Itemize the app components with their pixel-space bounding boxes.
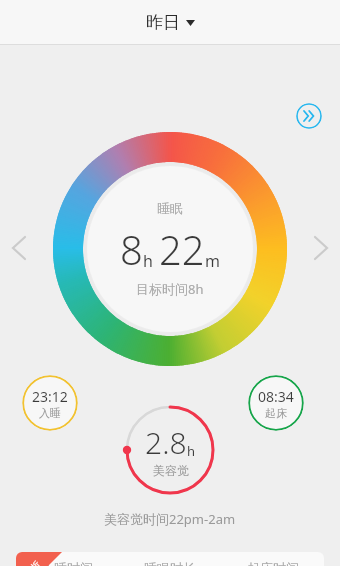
- staticText: 目标时间8h: [136, 280, 204, 298]
- button[interactable]: 08:34: [248, 375, 304, 431]
- staticText: 8: [120, 222, 143, 276]
- staticText: 睡眠: [157, 200, 183, 216]
- staticText: 睡眠时长: [144, 560, 196, 566]
- staticText: 入睡时间: [41, 560, 93, 566]
- button[interactable]: 睡眠: [87, 166, 253, 332]
- staticText: h: [143, 250, 153, 272]
- button[interactable]: 2.8: [122, 402, 218, 498]
- button[interactable]: 入睡时间: [16, 552, 324, 566]
- staticText: 入睡: [39, 406, 61, 420]
- staticText: 22: [159, 222, 205, 276]
- button[interactable]: Next day: [308, 226, 334, 270]
- staticText: 起床时间: [247, 560, 299, 566]
- button[interactable]: 昨日: [134, 6, 207, 39]
- staticText: 2.8: [145, 422, 187, 463]
- staticText: m: [205, 250, 220, 272]
- button[interactable]: 23:12: [22, 375, 78, 431]
- staticText: 分析: [22, 558, 42, 566]
- staticText: 08:34: [258, 387, 294, 406]
- staticText: h: [187, 442, 196, 460]
- staticText: 美容觉时间22pm-2am: [104, 510, 236, 528]
- staticText: 起床: [265, 406, 287, 420]
- staticText: 昨日: [146, 12, 180, 33]
- staticText: 23:12: [32, 387, 68, 406]
- button[interactable]: Next details: [296, 103, 322, 129]
- staticText: 美容觉: [153, 463, 189, 478]
- button[interactable]: Previous day: [6, 226, 32, 270]
